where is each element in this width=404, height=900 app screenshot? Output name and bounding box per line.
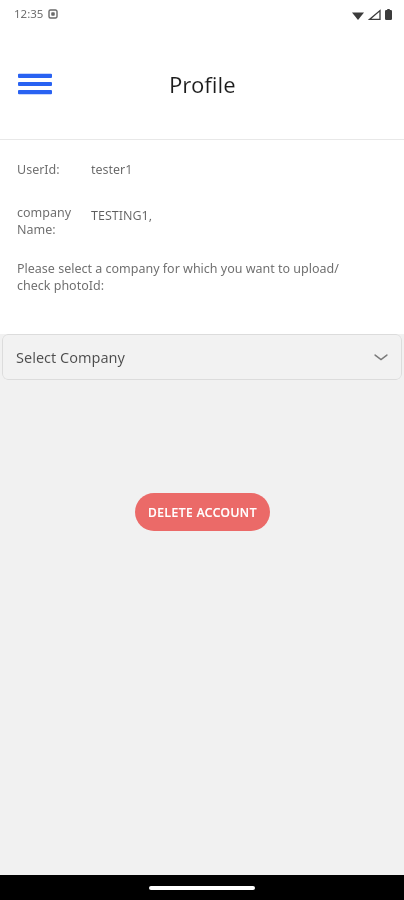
staticText: Please select a company for which you wa… xyxy=(17,260,339,294)
staticText: TESTING1, xyxy=(91,207,153,224)
button[interactable]: Open navigation menu xyxy=(10,59,60,109)
staticText: 12:35 xyxy=(14,6,44,22)
button[interactable]: Select Company xyxy=(2,334,402,380)
staticText: tester1 xyxy=(91,161,133,178)
staticText: company Name: xyxy=(17,204,72,237)
button[interactable]: DELETE ACCOUNT xyxy=(135,493,270,531)
staticText: DELETE ACCOUNT xyxy=(148,504,257,520)
staticText: Profile xyxy=(169,69,236,99)
staticText: Select Company xyxy=(16,347,125,367)
staticText: UserId: xyxy=(17,161,60,178)
